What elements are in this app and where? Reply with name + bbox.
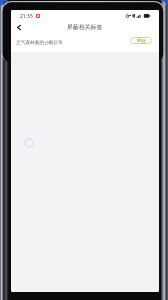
staticText: 屏蔽相关标签: [67, 23, 103, 30]
staticText: 元气森林酱的沙雕日常: [16, 39, 63, 45]
button[interactable]: 元气森林酱的沙雕日常: [11, 33, 159, 52]
staticText: 解除: [137, 38, 146, 44]
button[interactable]: 解除: [130, 37, 152, 44]
button[interactable]: Back: [11, 21, 27, 33]
staticText: 21:35: [20, 13, 33, 20]
